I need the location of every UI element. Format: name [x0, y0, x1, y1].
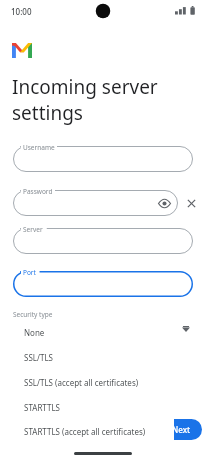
button[interactable]: Port	[13, 271, 193, 297]
staticText: Next	[172, 424, 191, 435]
staticText: Security type	[13, 310, 53, 319]
staticText: 10:00	[11, 6, 32, 17]
staticText: Username	[23, 143, 55, 152]
button[interactable]: Username	[13, 146, 193, 172]
button[interactable]: Clear	[185, 197, 198, 210]
button[interactable]: Password	[13, 190, 178, 216]
button[interactable]: SSL/TLS	[13, 345, 174, 370]
staticText: None	[24, 327, 45, 338]
staticText: SSL/TLS (accept all certificates)	[24, 377, 139, 388]
button[interactable]: Server	[13, 228, 193, 254]
other: Gmail	[12, 43, 32, 58]
staticText: Incoming server settings	[12, 74, 197, 125]
staticText: STARTTLS	[24, 402, 61, 413]
button[interactable]: Next	[160, 419, 202, 440]
staticText: SSL/TLS	[24, 352, 53, 363]
staticText: Password	[23, 187, 53, 196]
button[interactable]: STARTTLS (accept all certificates)	[13, 420, 174, 443]
button[interactable]: STARTTLS	[13, 395, 174, 420]
button[interactable]: SSL/TLS (accept all certificates)	[13, 370, 174, 395]
staticText: Port	[23, 268, 36, 277]
button[interactable]: Show password	[157, 196, 172, 211]
staticText: Server	[23, 225, 43, 234]
button[interactable]: None	[13, 320, 174, 345]
staticText: STARTTLS (accept all certificates)	[24, 426, 146, 437]
other: Expand	[182, 326, 190, 332]
